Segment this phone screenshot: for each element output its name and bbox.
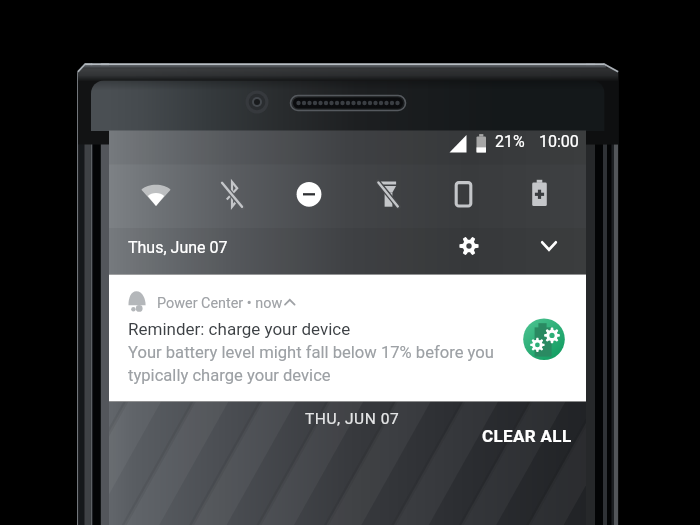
- button[interactable]: Power Center • now: [109, 275, 586, 402]
- staticText: Reminder: charge your device: [128, 319, 351, 339]
- staticText: Your battery level might fall below 17% …: [128, 343, 494, 385]
- button[interactable]: Thus, June 07: [128, 238, 228, 257]
- button[interactable]: CLEAR ALL: [482, 426, 572, 446]
- staticText: Power Center • now: [157, 295, 283, 312]
- staticText: Thus, June 07: [128, 238, 228, 257]
- staticText: 10:00: [539, 132, 579, 151]
- staticText: THU, JUN 07: [305, 410, 400, 428]
- button[interactable]: Settings: [452, 230, 484, 262]
- staticText: CLEAR ALL: [482, 426, 572, 446]
- button[interactable]: Expand notifications: [533, 229, 565, 261]
- staticText: 21%: [495, 132, 525, 151]
